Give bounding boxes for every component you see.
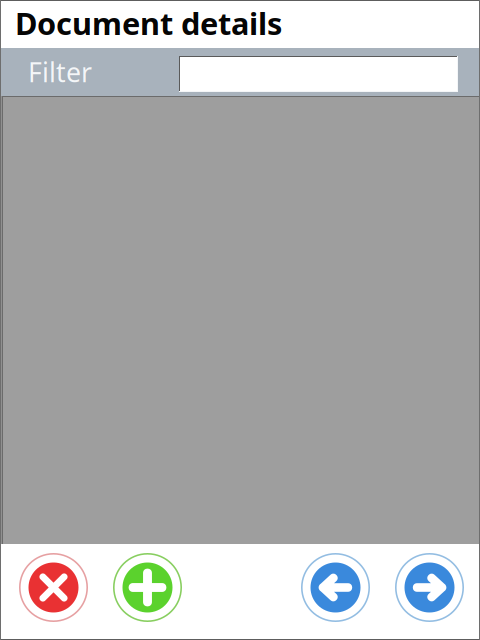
staticText: Filter xyxy=(28,54,92,90)
button[interactable]: Previous xyxy=(301,553,370,622)
button[interactable]: Add xyxy=(113,553,182,622)
button[interactable]: Filter text field xyxy=(179,56,458,92)
button[interactable]: Cancel xyxy=(19,553,88,622)
staticText: Document details xyxy=(15,3,282,43)
button[interactable]: Next xyxy=(395,553,464,622)
